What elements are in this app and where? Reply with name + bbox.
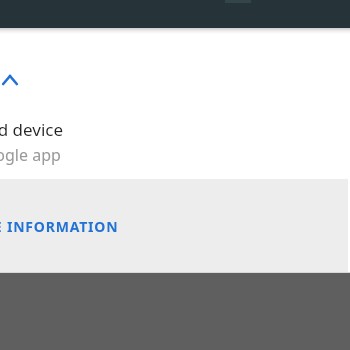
staticText: MORE INFORMATION (0, 217, 119, 236)
button[interactable]: MORE INFORMATION (0, 207, 306, 245)
staticText: Google app (0, 144, 61, 166)
staticText: Find device (0, 118, 64, 141)
button[interactable]: Collapse (0, 56, 34, 104)
